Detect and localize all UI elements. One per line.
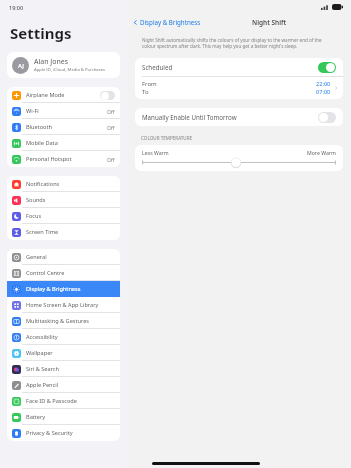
button[interactable]: Display & Brightness: [7, 281, 120, 297]
staticText: Screen Time: [26, 228, 59, 236]
staticText: Alan Jones: [34, 57, 69, 67]
staticText: 22:00: [316, 80, 331, 88]
staticText: Apple Pencil: [26, 381, 59, 389]
staticText: 07:00: [316, 88, 331, 96]
staticText: COLOUR TEMPERATURE: [141, 135, 193, 141]
staticText: Off: [107, 156, 115, 163]
button[interactable]: Display & Brightness: [127, 18, 205, 26]
button[interactable]: Screen Time: [7, 224, 120, 240]
staticText: Siri & Search: [26, 365, 59, 373]
button[interactable]: Mobile Data: [7, 135, 120, 151]
staticText: Accessibility: [26, 333, 58, 341]
staticText: From: [142, 80, 157, 88]
button[interactable]: Sounds: [7, 192, 120, 208]
staticText: Mobile Data: [26, 139, 58, 147]
button[interactable]: From: [135, 77, 343, 99]
button[interactable]: Airplane Mode: [7, 87, 120, 103]
staticText: Off: [107, 124, 115, 131]
staticText: Personal Hotspot: [26, 155, 72, 163]
staticText: Focus: [26, 212, 42, 220]
staticText: Battery: [26, 413, 46, 421]
staticText: AJ: [18, 62, 24, 70]
staticText: Scheduled: [142, 63, 173, 71]
staticText: Night Shift automatically shifts the col…: [142, 37, 331, 50]
staticText: 19:00: [9, 4, 24, 11]
staticText: Manually Enable Until Tomorrow: [142, 113, 237, 121]
button[interactable]: Personal Hotspot: [7, 151, 120, 167]
staticText: More Warm: [307, 149, 336, 156]
staticText: Sounds: [26, 196, 46, 204]
staticText: Less Warm: [142, 149, 169, 156]
button[interactable]: Face ID & Passcode: [7, 393, 120, 409]
staticText: Bluetooth: [26, 123, 52, 131]
button[interactable]: Manually Enable Until Tomorrow: [135, 108, 343, 126]
staticText: Home Screen & App Library: [26, 301, 99, 309]
button[interactable]: Privacy & Security: [7, 425, 120, 441]
staticText: Display & Brightness: [140, 18, 201, 26]
button[interactable]: General: [7, 249, 120, 265]
staticText: Night Shift: [252, 18, 287, 27]
button[interactable]: Wi-Fi: [7, 103, 120, 119]
staticText: Settings: [10, 23, 72, 43]
button[interactable]: Siri & Search: [7, 361, 120, 377]
staticText: Control Centre: [26, 269, 65, 277]
staticText: Off: [107, 108, 115, 115]
staticText: Multitasking & Gestures: [26, 317, 90, 325]
staticText: General: [26, 253, 47, 261]
staticText: Notifications: [26, 180, 60, 188]
button[interactable]: Control Centre: [7, 265, 120, 281]
staticText: Airplane Mode: [26, 91, 65, 99]
button[interactable]: Bluetooth: [7, 119, 120, 135]
button[interactable]: Home Screen & App Library: [7, 297, 120, 313]
button[interactable]: Wallpaper: [7, 345, 120, 361]
staticText: Face ID & Passcode: [26, 397, 77, 405]
staticText: Privacy & Security: [26, 429, 73, 437]
staticText: Wi-Fi: [26, 107, 39, 115]
staticText: Apple ID, iCloud, Media & Purchases: [34, 67, 106, 73]
staticText: Wallpaper: [26, 349, 53, 357]
staticText: To: [142, 88, 149, 96]
button[interactable]: AJ: [7, 52, 120, 78]
button[interactable]: Notifications: [7, 176, 120, 192]
staticText: Display & Brightness: [26, 285, 81, 293]
button[interactable]: Apple Pencil: [7, 377, 120, 393]
button[interactable]: Battery: [7, 409, 120, 425]
button[interactable]: Less Warm: [135, 145, 343, 171]
button[interactable]: Accessibility: [7, 329, 120, 345]
button[interactable]: Multitasking & Gestures: [7, 313, 120, 329]
button[interactable]: Scheduled: [135, 58, 343, 76]
button[interactable]: Focus: [7, 208, 120, 224]
